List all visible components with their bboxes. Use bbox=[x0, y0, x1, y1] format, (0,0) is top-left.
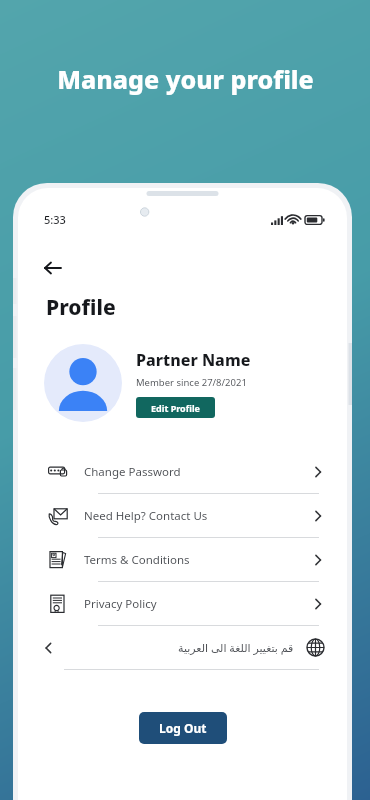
button[interactable]: Edit Profile bbox=[136, 397, 215, 418]
staticText: Privacy Policy bbox=[84, 596, 157, 612]
other: Back bbox=[42, 641, 56, 655]
staticText: Profile bbox=[46, 293, 116, 322]
button[interactable]: Privacy Policy bbox=[18, 582, 347, 625]
other: Language bbox=[306, 638, 325, 657]
staticText: Log Out bbox=[159, 720, 207, 736]
button[interactable]: Terms & Conditions bbox=[18, 538, 347, 581]
staticText: 5:33 bbox=[44, 212, 66, 227]
staticText: قم بتغيير اللغة الى العربية bbox=[178, 640, 294, 655]
staticText: Terms & Conditions bbox=[84, 552, 190, 568]
button[interactable]: Back bbox=[36, 251, 70, 285]
staticText: Need Help? Contact Us bbox=[84, 508, 208, 524]
staticText: Edit Profile bbox=[151, 402, 200, 414]
button[interactable]: Log Out bbox=[139, 712, 227, 744]
button[interactable]: Back bbox=[18, 626, 347, 669]
staticText: Change Password bbox=[84, 464, 181, 480]
staticText: Partner Name bbox=[136, 349, 251, 371]
button[interactable]: Change Password bbox=[18, 450, 347, 493]
staticText: Manage your profile bbox=[57, 62, 314, 96]
staticText: Member since 27/8/2021 bbox=[136, 376, 247, 389]
button[interactable]: Need Help? Contact Us bbox=[18, 494, 347, 537]
